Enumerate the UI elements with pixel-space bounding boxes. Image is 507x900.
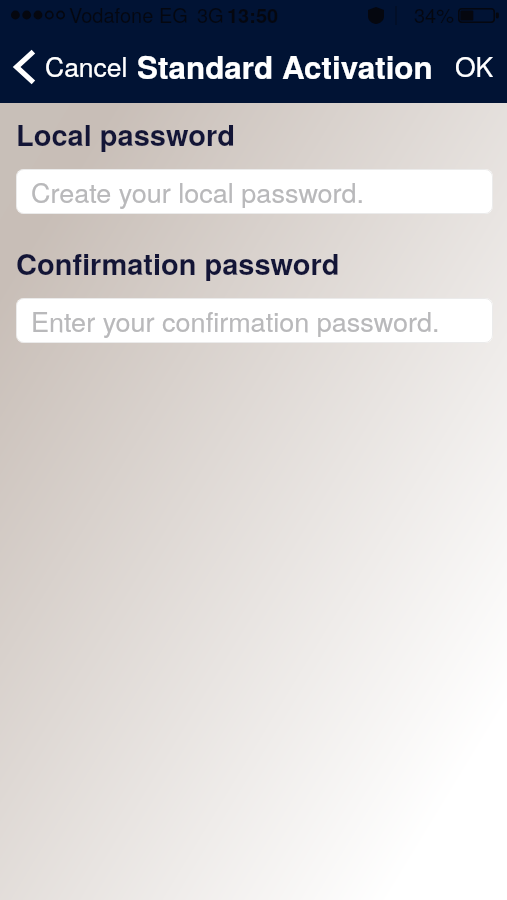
staticText: 34%: [414, 0, 455, 29]
staticText: Local password: [16, 113, 235, 155]
staticText: OK: [455, 47, 494, 85]
staticText: Vodafone EG: [69, 0, 188, 29]
button[interactable]: Confirmation password: [16, 298, 493, 343]
staticText: 3G: [197, 0, 224, 29]
staticText: Cancel: [45, 47, 128, 85]
staticText: Confirmation password: [16, 242, 340, 284]
staticText: 13:50: [227, 0, 279, 29]
button[interactable]: Cancel, go back: [6, 44, 138, 94]
staticText: Create your local password.: [31, 172, 365, 211]
staticText: Enter your confirmation password.: [31, 301, 440, 340]
button[interactable]: Local password: [16, 169, 493, 214]
staticText: Standard Activation: [137, 44, 433, 89]
button[interactable]: OK: [441, 42, 507, 90]
